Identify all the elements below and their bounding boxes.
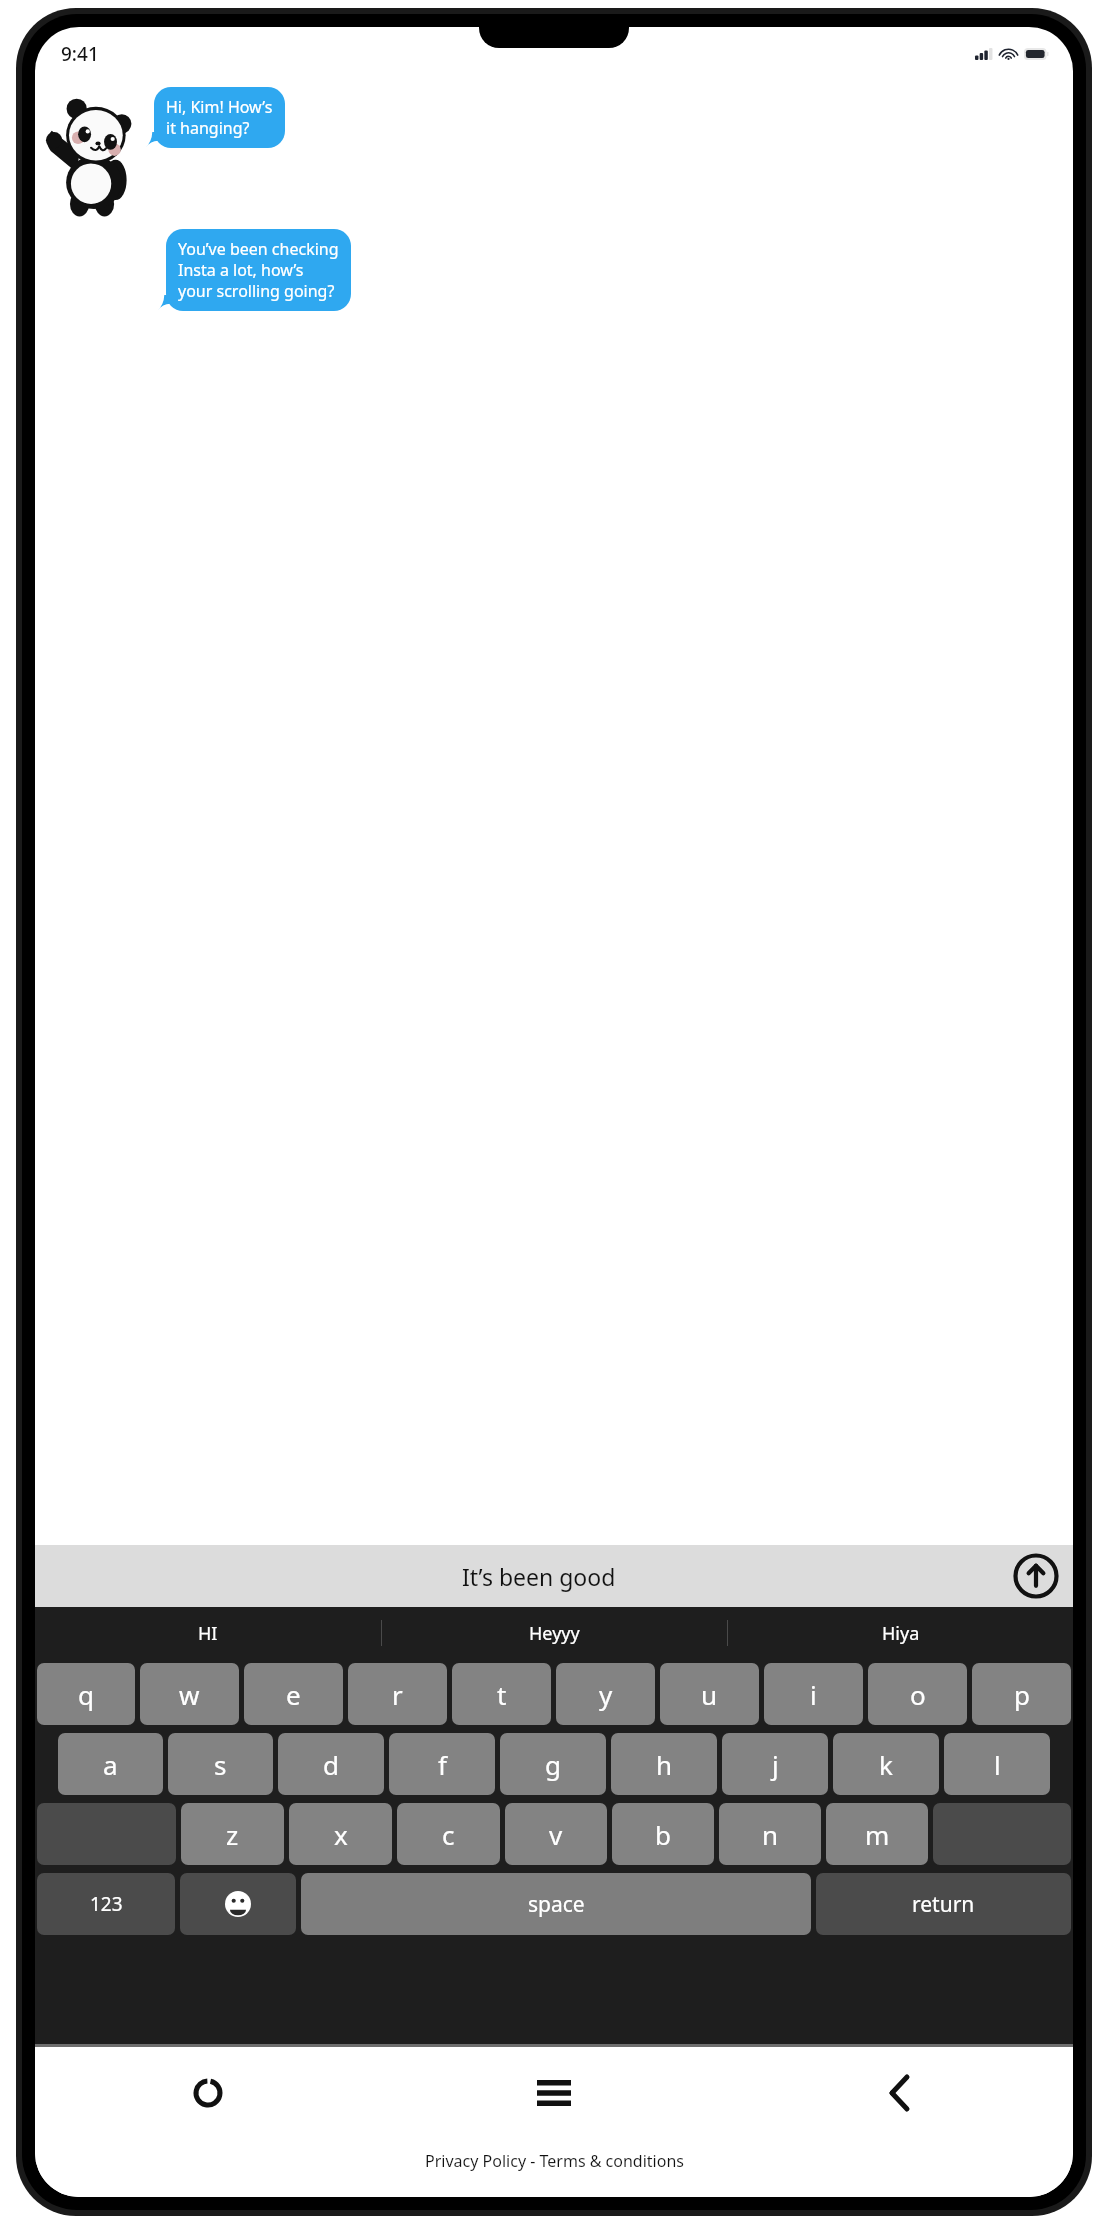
button[interactable]: v bbox=[505, 1803, 607, 1865]
button[interactable]: s bbox=[168, 1733, 273, 1795]
button[interactable]: b bbox=[612, 1803, 714, 1865]
button[interactable]: Recents bbox=[35, 2047, 381, 2139]
button[interactable]: u bbox=[660, 1663, 759, 1725]
staticText: You’ve been checking Insta a lot, how’s … bbox=[178, 238, 339, 302]
staticText: It’s been good bbox=[462, 1561, 616, 1592]
button[interactable]: k bbox=[833, 1733, 939, 1795]
staticText: v bbox=[549, 1817, 563, 1852]
staticText: s bbox=[214, 1747, 227, 1782]
button[interactable]: l bbox=[944, 1733, 1050, 1795]
button[interactable]: f bbox=[389, 1733, 495, 1795]
staticText: Hiya bbox=[882, 1621, 920, 1646]
button[interactable]: You’ve been checking Insta a lot, how’s … bbox=[166, 229, 351, 311]
staticText: x bbox=[334, 1817, 348, 1852]
staticText: u bbox=[701, 1677, 718, 1712]
staticText: space bbox=[528, 1890, 585, 1919]
staticText: h bbox=[656, 1747, 673, 1782]
button[interactable]: return bbox=[816, 1873, 1071, 1935]
button[interactable]: p bbox=[972, 1663, 1071, 1725]
button[interactable]: d bbox=[278, 1733, 384, 1795]
staticText: n bbox=[762, 1817, 779, 1852]
button[interactable]: a bbox=[58, 1733, 163, 1795]
button[interactable]: Heyyy bbox=[382, 1607, 727, 1659]
staticText: k bbox=[879, 1747, 893, 1782]
button[interactable]: 123 bbox=[37, 1873, 175, 1935]
button[interactable]: Privacy Policy - Terms & conditions bbox=[425, 2150, 684, 2172]
button[interactable]: n bbox=[719, 1803, 821, 1865]
button[interactable]: q bbox=[37, 1663, 135, 1725]
staticText: 123 bbox=[90, 1891, 123, 1917]
button[interactable]: Hiya bbox=[728, 1607, 1073, 1659]
staticText: e bbox=[286, 1677, 301, 1712]
button[interactable]: Menu bbox=[381, 2047, 727, 2139]
button[interactable]: h bbox=[611, 1733, 717, 1795]
button[interactable]: Back bbox=[727, 2047, 1073, 2139]
button[interactable]: m bbox=[826, 1803, 928, 1865]
staticText: m bbox=[865, 1817, 890, 1852]
staticText: y bbox=[599, 1677, 613, 1712]
button[interactable]: z bbox=[181, 1803, 284, 1865]
staticText: p bbox=[1014, 1677, 1030, 1712]
button[interactable]: Emoji bbox=[180, 1873, 296, 1935]
button[interactable]: t bbox=[452, 1663, 551, 1725]
button[interactable]: i bbox=[764, 1663, 863, 1725]
staticText: f bbox=[438, 1747, 447, 1782]
staticText: z bbox=[226, 1817, 239, 1852]
button[interactable]: x bbox=[289, 1803, 392, 1865]
staticText: i bbox=[810, 1677, 817, 1712]
button[interactable]: o bbox=[868, 1663, 967, 1725]
button[interactable]: It’s been good bbox=[35, 1545, 1073, 1607]
button[interactable]: Hi, Kim! How’s it hanging? bbox=[154, 87, 285, 148]
button[interactable]: g bbox=[500, 1733, 606, 1795]
button[interactable]: r bbox=[348, 1663, 447, 1725]
staticText: w bbox=[179, 1677, 200, 1712]
staticText: r bbox=[392, 1677, 403, 1712]
staticText: Hi, Kim! How’s it hanging? bbox=[166, 96, 273, 139]
staticText: t bbox=[497, 1677, 507, 1712]
staticText: c bbox=[442, 1817, 455, 1852]
staticText: o bbox=[910, 1677, 926, 1712]
staticText: Heyyy bbox=[529, 1621, 580, 1646]
staticText: b bbox=[655, 1817, 671, 1852]
staticText: return bbox=[912, 1890, 975, 1919]
button[interactable]: Send bbox=[1013, 1553, 1059, 1599]
staticText: 9:41 bbox=[61, 41, 99, 67]
staticText: l bbox=[994, 1747, 1001, 1782]
button[interactable]: HI bbox=[35, 1607, 381, 1659]
staticText: HI bbox=[198, 1621, 218, 1646]
button[interactable]: e bbox=[244, 1663, 343, 1725]
staticText: j bbox=[772, 1747, 779, 1782]
staticText: q bbox=[78, 1677, 94, 1712]
button[interactable]: w bbox=[140, 1663, 239, 1725]
staticText: d bbox=[323, 1747, 339, 1782]
staticText: a bbox=[103, 1747, 118, 1782]
button[interactable]: j bbox=[722, 1733, 828, 1795]
button[interactable]: y bbox=[556, 1663, 655, 1725]
staticText: g bbox=[545, 1747, 561, 1782]
button[interactable]: space bbox=[301, 1873, 811, 1935]
button[interactable]: c bbox=[397, 1803, 500, 1865]
